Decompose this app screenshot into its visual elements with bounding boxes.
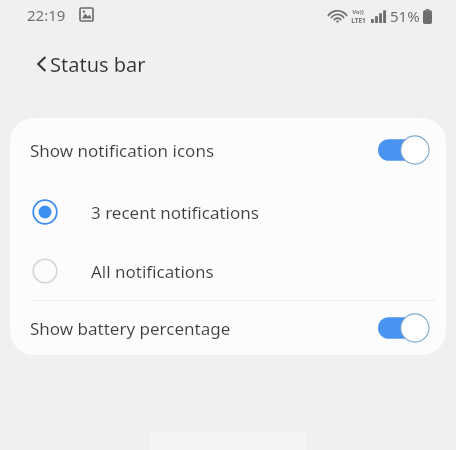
button[interactable]: Selected [32, 199, 58, 225]
staticText: Show battery percentage [30, 317, 231, 340]
button[interactable]: Selected [10, 182, 446, 242]
staticText: Show notification icons [30, 139, 215, 162]
staticText: 51% [390, 6, 420, 26]
staticText: 3 recent notifications [91, 201, 259, 224]
button[interactable]: Not selected [10, 242, 446, 300]
button[interactable]: Show notification icons [10, 118, 446, 182]
staticText: LTE1 [351, 16, 366, 25]
button[interactable]: Back [22, 44, 62, 84]
staticText: Status bar [50, 51, 146, 78]
button[interactable]: Toggle [378, 313, 430, 343]
staticText: All notifications [91, 260, 214, 283]
button[interactable]: Not selected [32, 258, 58, 284]
button[interactable]: Show battery percentage [10, 301, 446, 355]
staticText: 22:19 [27, 5, 66, 25]
button[interactable]: Toggle [378, 135, 430, 165]
staticText: Vo)) [352, 8, 364, 16]
